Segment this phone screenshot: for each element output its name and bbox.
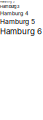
staticText: Hamburg 3: [0, 4, 19, 9]
staticText: Hamburg 2: [0, 0, 15, 3]
staticText: Hamburg 4: [0, 10, 28, 17]
staticText: Hamburg 5: [0, 17, 35, 26]
staticText: Hamburg 6: [0, 27, 42, 36]
